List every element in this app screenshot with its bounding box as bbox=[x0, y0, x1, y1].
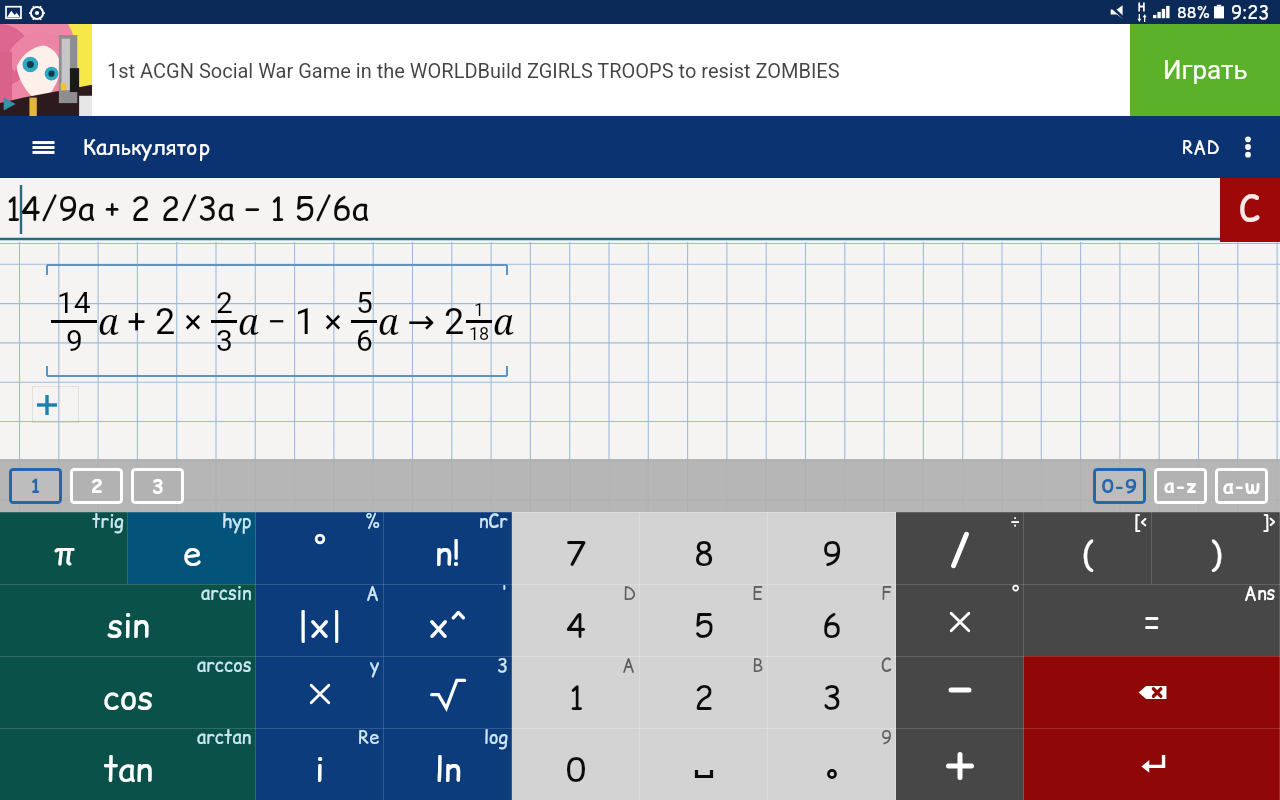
button[interactable]: arcsin bbox=[0, 584, 256, 656]
staticText: RAD bbox=[1182, 135, 1220, 160]
staticText: a bbox=[493, 297, 514, 346]
staticText: arctan bbox=[197, 725, 252, 750]
staticText: − bbox=[259, 302, 295, 341]
button[interactable]: Re bbox=[256, 728, 384, 800]
button[interactable]: a-z bbox=[1154, 468, 1207, 504]
button[interactable]: Degree bbox=[256, 512, 384, 584]
staticText: i bbox=[315, 746, 325, 792]
staticText: a-z bbox=[1164, 473, 1197, 500]
staticText: 9 bbox=[881, 725, 892, 750]
button[interactable]: 2 bbox=[70, 468, 123, 504]
button[interactable]: E bbox=[640, 584, 768, 656]
staticText: 0-9 bbox=[1102, 473, 1137, 500]
button[interactable]: 7 bbox=[512, 512, 640, 584]
button[interactable]: A bbox=[512, 656, 640, 728]
button[interactable]: α-ω bbox=[1215, 468, 1268, 504]
staticText: 8 bbox=[694, 530, 715, 576]
staticText: ' bbox=[501, 581, 508, 606]
button[interactable]: 3 bbox=[131, 468, 184, 504]
staticText: 14/9a + 2 2/3a − 1 5/6a bbox=[6, 185, 369, 231]
staticText: 2 bbox=[91, 473, 103, 500]
button[interactable]: 1st ACGN Social War Game in the WORLDBui… bbox=[92, 24, 1130, 116]
button[interactable]: 14/9a + 2 2/3a − 1 5/6a bbox=[0, 178, 1220, 242]
button[interactable]: arccos bbox=[0, 656, 256, 728]
button[interactable]: 8 bbox=[640, 512, 768, 584]
staticText: [< bbox=[1134, 509, 1148, 534]
button[interactable]: 9 bbox=[768, 512, 896, 584]
button[interactable]: Multiply bbox=[896, 584, 1024, 656]
button[interactable]: A bbox=[256, 584, 384, 656]
staticText: a bbox=[98, 297, 119, 346]
button[interactable]: Backspace bbox=[1024, 656, 1280, 728]
button[interactable]: RAD bbox=[1172, 125, 1230, 170]
button[interactable]: Square root bbox=[384, 656, 512, 728]
staticText: n! bbox=[435, 530, 461, 576]
staticText: 2 bbox=[216, 285, 233, 320]
staticText: Калькулятор bbox=[83, 133, 210, 162]
staticText: a bbox=[238, 297, 259, 346]
staticText: y bbox=[370, 653, 380, 678]
staticText: 1 bbox=[30, 473, 42, 500]
staticText: A bbox=[366, 581, 380, 606]
staticText: % bbox=[365, 509, 380, 534]
staticText: Ans bbox=[1244, 581, 1276, 606]
staticText: 2 bbox=[444, 301, 465, 343]
button[interactable]: Advertisement image bbox=[0, 24, 92, 116]
staticText: arccos bbox=[197, 653, 252, 678]
staticText: arcsin bbox=[201, 581, 252, 606]
staticText: trig bbox=[92, 509, 124, 534]
staticText: 14 bbox=[57, 285, 91, 320]
staticText: ÷ bbox=[1011, 509, 1020, 534]
button[interactable]: Enter bbox=[1024, 728, 1280, 800]
button[interactable]: C bbox=[768, 656, 896, 728]
button[interactable]: Играть bbox=[1130, 24, 1280, 116]
staticText: |x| bbox=[296, 602, 344, 648]
staticText: α-ω bbox=[1223, 473, 1260, 500]
button[interactable]: ]> bbox=[1152, 512, 1280, 584]
staticText: ]> bbox=[1262, 509, 1276, 534]
button[interactable]: Ans bbox=[1024, 584, 1280, 656]
button[interactable]: Decimal point bbox=[768, 728, 896, 800]
staticText: 6 bbox=[822, 602, 843, 648]
button[interactable]: arctan bbox=[0, 728, 256, 800]
button[interactable]: Divide bbox=[896, 512, 1024, 584]
staticText: 9:23 bbox=[1231, 0, 1270, 24]
staticText: 1st ACGN Social War Game in the WORLDBui… bbox=[107, 59, 840, 82]
button[interactable]: trig bbox=[0, 512, 128, 584]
button[interactable]: Subtract bbox=[896, 656, 1024, 728]
button[interactable]: Add new line bbox=[32, 386, 79, 423]
staticText: C bbox=[1239, 183, 1261, 233]
staticText: e bbox=[183, 530, 202, 576]
button[interactable]: D bbox=[512, 584, 640, 656]
staticText: D bbox=[623, 581, 636, 606]
button[interactable]: More options bbox=[1230, 129, 1266, 165]
button[interactable]: Add bbox=[896, 728, 1024, 800]
staticText: hyp bbox=[222, 509, 252, 534]
button[interactable]: Multiply bbox=[256, 656, 384, 728]
button[interactable]: 1 bbox=[9, 468, 62, 504]
staticText: E bbox=[752, 581, 764, 606]
staticText: log bbox=[484, 725, 508, 750]
staticText: → bbox=[399, 302, 444, 341]
staticText: 18 bbox=[469, 323, 490, 344]
staticText: Играть bbox=[1163, 55, 1248, 85]
button[interactable]: hyp bbox=[128, 512, 256, 584]
button[interactable]: log bbox=[384, 728, 512, 800]
staticText: F bbox=[881, 581, 892, 606]
button[interactable]: F bbox=[768, 584, 896, 656]
button[interactable]: B bbox=[640, 656, 768, 728]
button[interactable]: C bbox=[1220, 178, 1280, 242]
staticText: tan bbox=[103, 746, 153, 792]
staticText: nCr bbox=[479, 509, 508, 534]
staticText: = bbox=[1144, 598, 1161, 644]
staticText: 3 bbox=[152, 473, 164, 500]
staticText: 0 bbox=[566, 746, 587, 792]
button[interactable]: 0-9 bbox=[1093, 468, 1146, 504]
button[interactable]: [< bbox=[1024, 512, 1152, 584]
staticText: × bbox=[176, 302, 210, 341]
button[interactable]: 0 bbox=[512, 728, 640, 800]
button[interactable]: Space bbox=[640, 728, 768, 800]
button[interactable]: nCr bbox=[384, 512, 512, 584]
button[interactable]: ' bbox=[384, 584, 512, 656]
button[interactable]: Open navigation menu bbox=[25, 129, 61, 165]
